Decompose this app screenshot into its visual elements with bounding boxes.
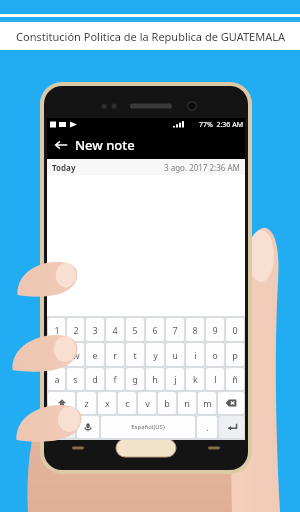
- staticText: l: [214, 373, 217, 385]
- staticText: Constitución Politica de la Republica de…: [16, 29, 285, 44]
- staticText: u: [172, 349, 178, 361]
- button[interactable]: ñ: [226, 368, 244, 390]
- staticText: 7: [172, 324, 178, 336]
- staticText: k: [193, 373, 198, 385]
- button[interactable]: Backspace: [218, 392, 244, 414]
- button[interactable]: i: [186, 343, 204, 366]
- button[interactable]: o: [206, 343, 224, 366]
- staticText: z: [84, 397, 89, 409]
- button[interactable]: y: [146, 343, 164, 366]
- button[interactable]: Shift: [48, 392, 75, 414]
- button[interactable]: e: [86, 343, 104, 366]
- button[interactable]: t: [126, 343, 144, 366]
- button[interactable]: w: [67, 343, 84, 366]
- button[interactable]: Sym: [48, 416, 75, 438]
- button[interactable]: 0: [226, 318, 244, 341]
- staticText: x: [105, 397, 110, 409]
- staticText: w: [72, 349, 80, 361]
- staticText: 0: [232, 324, 238, 336]
- button[interactable]: [47, 175, 245, 316]
- button[interactable]: r: [106, 343, 124, 366]
- button[interactable]: q: [48, 343, 65, 366]
- button[interactable]: z: [77, 392, 96, 414]
- button[interactable]: b: [158, 392, 176, 414]
- button[interactable]: 8: [186, 318, 204, 341]
- staticText: r: [113, 349, 117, 361]
- button[interactable]: k: [186, 368, 204, 390]
- button[interactable]: h: [146, 368, 164, 390]
- button[interactable]: m: [198, 392, 216, 414]
- staticText: c: [125, 397, 130, 409]
- button[interactable]: x: [98, 392, 116, 414]
- button[interactable]: Enter: [219, 416, 244, 438]
- button[interactable]: c: [118, 392, 136, 414]
- button[interactable]: 3: [86, 318, 104, 341]
- staticText: 6: [152, 324, 158, 336]
- button[interactable]: u: [166, 343, 184, 366]
- staticText: i: [194, 349, 197, 361]
- button[interactable]: 1: [48, 318, 65, 341]
- button[interactable]: 5: [126, 318, 144, 341]
- staticText: 3: [92, 324, 98, 336]
- staticText: 4: [112, 324, 118, 336]
- button[interactable]: v: [138, 392, 156, 414]
- button[interactable]: 7: [166, 318, 184, 341]
- staticText: d: [92, 373, 98, 385]
- staticText: b: [164, 397, 170, 409]
- button[interactable]: p: [226, 343, 244, 366]
- staticText: t: [133, 349, 137, 361]
- button[interactable]: a: [48, 368, 65, 390]
- button[interactable]: .: [197, 416, 217, 438]
- staticText: a: [54, 373, 60, 385]
- button[interactable]: 6: [146, 318, 164, 341]
- staticText: e: [92, 349, 98, 361]
- staticText: h: [152, 373, 158, 385]
- button[interactable]: 4: [106, 318, 124, 341]
- staticText: n: [184, 397, 190, 409]
- staticText: p: [232, 349, 238, 361]
- staticText: q: [54, 349, 60, 361]
- button[interactable]: n: [178, 392, 196, 414]
- staticText: s: [73, 373, 78, 385]
- staticText: 9: [212, 324, 218, 336]
- staticText: 3 ago. 2017 2:36 AM: [164, 162, 240, 173]
- staticText: y: [153, 349, 158, 361]
- button[interactable]: g: [126, 368, 144, 390]
- button[interactable]: Español(US): [101, 416, 195, 438]
- staticText: 1: [54, 324, 60, 336]
- staticText: 5: [132, 324, 138, 336]
- button[interactable]: d: [86, 368, 104, 390]
- button[interactable]: Voice input: [77, 416, 99, 438]
- button[interactable]: 9: [206, 318, 224, 341]
- button[interactable]: f: [106, 368, 124, 390]
- staticText: g: [132, 373, 138, 385]
- staticText: Today: [52, 162, 76, 173]
- staticText: m: [203, 397, 212, 409]
- button[interactable]: j: [166, 368, 184, 390]
- staticText: ñ: [232, 373, 238, 385]
- staticText: j: [174, 373, 177, 385]
- staticText: 2: [73, 324, 79, 336]
- staticText: f: [113, 373, 117, 385]
- staticText: .: [206, 422, 209, 433]
- staticText: Sym: [55, 422, 69, 432]
- button[interactable]: 2: [67, 318, 84, 341]
- button[interactable]: Back: [47, 131, 75, 159]
- button[interactable]: l: [206, 368, 224, 390]
- button[interactable]: s: [67, 368, 84, 390]
- staticText: v: [145, 397, 150, 409]
- staticText: 8: [192, 324, 198, 336]
- staticText: o: [212, 349, 218, 361]
- button[interactable]: Back: [47, 131, 245, 159]
- staticText: 77% 2:36 AM: [199, 120, 243, 130]
- staticText: New note: [75, 136, 135, 154]
- staticText: Español(US): [131, 423, 165, 431]
